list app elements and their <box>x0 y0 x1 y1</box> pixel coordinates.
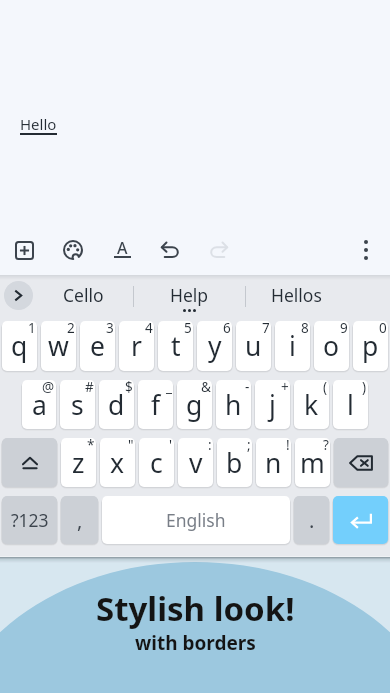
button[interactable]: l <box>333 380 368 429</box>
staticText: c <box>150 445 163 481</box>
button[interactable]: Theme <box>50 227 96 273</box>
staticText: l <box>347 387 354 423</box>
staticText: & <box>201 380 211 396</box>
staticText: + <box>281 380 289 396</box>
button[interactable]: f <box>138 380 173 429</box>
staticText: w <box>48 328 69 364</box>
staticText: r <box>131 328 142 364</box>
button[interactable]: Insert <box>1 227 47 273</box>
button[interactable]: Help <box>134 275 245 317</box>
staticText: English <box>166 508 226 532</box>
staticText: m <box>300 445 325 481</box>
button[interactable]: n <box>256 438 291 487</box>
staticText: ; <box>247 438 251 454</box>
button[interactable]: r <box>119 321 154 371</box>
button[interactable]: i <box>275 321 310 371</box>
button[interactable]: Backspace <box>334 438 388 487</box>
staticText: b <box>226 445 243 481</box>
button[interactable]: Text style <box>99 227 145 273</box>
button[interactable]: h <box>216 380 251 429</box>
button[interactable]: k <box>294 380 329 429</box>
staticText: " <box>128 438 134 454</box>
staticText: ! <box>286 438 290 454</box>
staticText: i <box>289 328 296 364</box>
staticText: 3 <box>106 321 114 337</box>
staticText: ? <box>323 438 329 454</box>
staticText: a <box>32 387 47 423</box>
staticText: Hello <box>20 114 57 134</box>
button[interactable]: e <box>80 321 115 371</box>
staticText: with borders <box>135 630 256 656</box>
button[interactable]: Hellos <box>246 275 346 317</box>
staticText: , <box>77 507 83 534</box>
button[interactable]: Enter <box>333 496 388 544</box>
staticText: A <box>117 237 128 259</box>
staticText: _ <box>166 380 172 396</box>
button[interactable]: d <box>99 380 134 429</box>
button[interactable]: Expand toolbar <box>4 281 33 310</box>
button[interactable]: Redo <box>196 227 242 273</box>
staticText: ( <box>323 380 328 396</box>
staticText: z <box>72 445 85 481</box>
button[interactable]: q <box>2 321 37 371</box>
staticText: 7 <box>262 321 270 337</box>
staticText: 4 <box>145 321 153 337</box>
button[interactable]: t <box>158 321 193 371</box>
button[interactable]: v <box>178 438 213 487</box>
staticText: g <box>186 387 203 423</box>
staticText: 1 <box>28 321 36 337</box>
staticText: p <box>362 328 379 364</box>
button[interactable]: j <box>255 380 290 429</box>
staticText: 2 <box>67 321 75 337</box>
button[interactable]: English <box>102 496 290 544</box>
staticText: j <box>269 387 276 423</box>
staticText: - <box>245 380 250 396</box>
button[interactable]: g <box>177 380 212 429</box>
staticText: Cello <box>63 283 104 307</box>
button[interactable]: a <box>22 380 56 429</box>
button[interactable]: y <box>197 321 232 371</box>
staticText: Stylish look! <box>96 586 295 631</box>
button[interactable]: z <box>61 438 96 487</box>
staticText: * <box>87 438 95 454</box>
staticText: 8 <box>301 321 309 337</box>
staticText: v <box>189 445 203 481</box>
staticText: Help <box>170 283 209 307</box>
staticText: h <box>225 387 242 423</box>
staticText: x <box>110 445 125 481</box>
button[interactable]: c <box>139 438 174 487</box>
button[interactable]: , <box>61 496 98 544</box>
staticText: y <box>208 328 222 364</box>
button[interactable]: Cello <box>34 275 133 317</box>
button[interactable]: u <box>236 321 271 371</box>
button[interactable]: Shift <box>2 438 57 487</box>
button[interactable]: More options <box>343 227 389 273</box>
staticText: ' <box>169 438 173 454</box>
staticText: 5 <box>184 321 192 337</box>
staticText: s <box>71 387 84 423</box>
staticText: k <box>304 387 319 423</box>
staticText: e <box>90 328 105 364</box>
staticText: u <box>245 328 262 364</box>
staticText: Hellos <box>271 283 322 307</box>
button[interactable]: Undo <box>147 227 193 273</box>
staticText: o <box>323 328 340 364</box>
staticText: 9 <box>340 321 348 337</box>
staticText: q <box>11 328 28 364</box>
button[interactable]: p <box>353 321 388 371</box>
button[interactable]: s <box>60 380 95 429</box>
button[interactable]: o <box>314 321 349 371</box>
button[interactable]: . <box>294 496 329 544</box>
button[interactable]: m <box>295 438 330 487</box>
staticText: ?123 <box>11 508 49 532</box>
staticText: # <box>85 380 94 396</box>
button[interactable]: w <box>41 321 76 371</box>
staticText: f <box>151 387 161 423</box>
button[interactable]: ?123 <box>2 496 57 544</box>
staticText: $ <box>125 380 133 396</box>
staticText: @ <box>42 380 55 396</box>
button[interactable]: b <box>217 438 252 487</box>
staticText: . <box>309 507 315 534</box>
staticText: : <box>208 438 212 454</box>
button[interactable]: x <box>100 438 135 487</box>
